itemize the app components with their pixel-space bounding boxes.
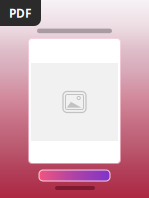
button[interactable] [39,170,110,181]
staticText: PDF [9,5,32,21]
